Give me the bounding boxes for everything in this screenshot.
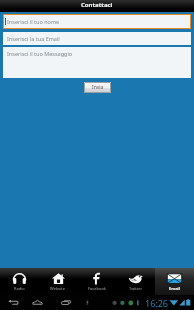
staticText: Website (50, 286, 66, 291)
button[interactable]: Recent apps (54, 295, 78, 310)
staticText: Contattaci (81, 1, 113, 9)
staticText: Twitter (129, 286, 143, 291)
button[interactable]: Inserisci il tuo Messaggio (3, 47, 191, 78)
button[interactable]: Facebook (77, 268, 116, 295)
staticText: Inserisci la tua Email (7, 35, 60, 42)
staticText: Facebook (88, 286, 106, 291)
button[interactable]: Back (0, 295, 26, 310)
button[interactable]: Inserisci la tua Email (3, 32, 191, 45)
button[interactable]: Website (38, 268, 77, 295)
staticText: Invia (92, 84, 104, 91)
button[interactable]: Inserisci il tuo nome (3, 14, 191, 29)
staticText: Inserisci il tuo Messaggio (7, 50, 73, 57)
button[interactable]: Email (155, 268, 194, 295)
button[interactable]: Invia (84, 82, 111, 93)
button[interactable]: Twitter (116, 268, 155, 295)
staticText: Email (169, 286, 180, 291)
button[interactable]: Home (25, 295, 49, 310)
staticText: Inserisci il tuo nome (7, 18, 60, 25)
button[interactable]: Radio (0, 268, 38, 295)
staticText: 16:26 (145, 297, 169, 309)
button[interactable]: More options (80, 295, 94, 310)
staticText: Radio (14, 286, 25, 291)
